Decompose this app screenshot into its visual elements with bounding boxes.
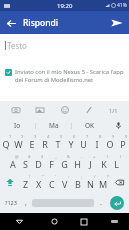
staticText: C — [49, 178, 55, 190]
button[interactable]: / — [84, 172, 97, 192]
staticText: ( — [107, 154, 109, 159]
button[interactable]: ; — [71, 172, 84, 192]
staticText: Z — [23, 178, 29, 190]
staticText: , — [25, 198, 27, 208]
staticText: 7 — [86, 134, 89, 139]
button[interactable]: Recent apps — [69, 213, 99, 230]
button[interactable]: 1/1 — [106, 103, 120, 117]
button[interactable]: # — [19, 152, 32, 172]
staticText: 19:20 — [57, 2, 73, 10]
staticText: 2 — [21, 134, 24, 139]
button[interactable]: 2 — [12, 132, 25, 152]
staticText: " — [42, 174, 44, 179]
button[interactable]: - — [71, 152, 84, 172]
button[interactable]: : — [58, 172, 71, 192]
button[interactable]: @ — [6, 152, 19, 172]
button[interactable]: & — [58, 152, 71, 172]
staticText: + — [93, 154, 96, 159]
button[interactable]: OK — [72, 119, 107, 132]
staticText: N — [87, 178, 94, 190]
button[interactable]: ) — [110, 152, 123, 172]
button[interactable]: Home — [39, 213, 69, 230]
staticText: Io — [14, 121, 21, 130]
button[interactable]: + — [84, 152, 97, 172]
staticText: 5 — [60, 134, 63, 139]
staticText: D — [35, 158, 42, 170]
button[interactable]: Attach file — [82, 103, 96, 117]
staticText: M — [99, 178, 108, 190]
button[interactable]: Backspace — [110, 172, 129, 192]
staticText: Rispondi — [23, 17, 59, 29]
button[interactable]: Shift — [0, 172, 19, 192]
button[interactable]: 6 — [64, 132, 77, 152]
button[interactable]: Voice input — [107, 119, 129, 132]
staticText: V — [62, 178, 68, 190]
button[interactable]: ' — [45, 172, 58, 192]
staticText: 0 — [125, 134, 128, 139]
staticText: 6 — [73, 134, 76, 139]
staticText: H — [74, 158, 81, 170]
staticText: ; — [81, 174, 83, 179]
button[interactable]: 4 — [38, 132, 51, 152]
button[interactable]: Back — [0, 213, 39, 230]
staticText: : — [68, 174, 70, 179]
button[interactable]: ?123 — [2, 192, 20, 213]
button[interactable]: Hide keyboard — [99, 213, 129, 230]
staticText: T — [55, 138, 61, 150]
button[interactable]: Emoji — [58, 103, 72, 117]
button[interactable]: 0 — [116, 132, 129, 152]
staticText: J — [89, 158, 92, 170]
staticText: K — [101, 158, 107, 170]
button[interactable]: ! — [19, 172, 32, 192]
button[interactable]: Camera — [9, 103, 23, 117]
button[interactable]: ( — [97, 152, 110, 172]
staticText: ?123 — [5, 199, 17, 206]
staticText: P — [120, 138, 126, 150]
staticText: _ — [55, 154, 57, 159]
staticText: Inviato con il mio Nexus 5 - Scarica l'a… — [15, 68, 124, 84]
button[interactable]: , — [20, 192, 31, 213]
button[interactable]: 8 — [90, 132, 103, 152]
staticText: ) — [120, 154, 122, 159]
staticText: / — [94, 174, 96, 179]
button[interactable]: ? — [97, 172, 110, 192]
button[interactable]: 5 — [51, 132, 64, 152]
button[interactable]: Io — [0, 119, 35, 132]
staticText: ' — [55, 174, 56, 179]
button[interactable]: 3 — [25, 132, 38, 152]
staticText: # — [28, 154, 31, 159]
staticText: U — [80, 138, 87, 150]
button[interactable]: . — [95, 192, 106, 213]
staticText: G — [61, 158, 68, 170]
staticText: O — [106, 138, 114, 150]
button[interactable]: Gallery — [33, 103, 47, 117]
staticText: $ — [41, 154, 44, 159]
staticText: OK — [85, 121, 95, 130]
button[interactable]: 9 — [103, 132, 116, 152]
staticText: & — [67, 154, 70, 159]
staticText: F — [49, 158, 54, 170]
button[interactable]: Back — [2, 14, 20, 32]
staticText: Q — [2, 138, 10, 150]
staticText: R — [42, 138, 48, 150]
button[interactable]: $ — [32, 152, 45, 172]
staticText: 9 — [112, 134, 115, 139]
staticText: A — [10, 158, 16, 170]
button[interactable]: Inviato con il mio Nexus 5 - Scarica l'a… — [5, 68, 124, 84]
staticText: - — [81, 154, 83, 159]
staticText: @ — [15, 154, 19, 159]
button[interactable]: _ — [45, 152, 58, 172]
button[interactable]: Send — [108, 14, 126, 32]
staticText: 8 — [99, 134, 102, 139]
staticText: Ma — [49, 121, 59, 130]
button[interactable]: Ma — [36, 119, 71, 132]
staticText: B — [75, 178, 81, 190]
button[interactable]: 7 — [77, 132, 90, 152]
staticText: 41% — [117, 2, 127, 9]
staticText: X — [36, 178, 42, 190]
button[interactable]: 1 — [0, 132, 12, 152]
button[interactable]: Enter — [106, 192, 127, 213]
button[interactable]: " — [32, 172, 45, 192]
staticText: I — [95, 138, 99, 150]
